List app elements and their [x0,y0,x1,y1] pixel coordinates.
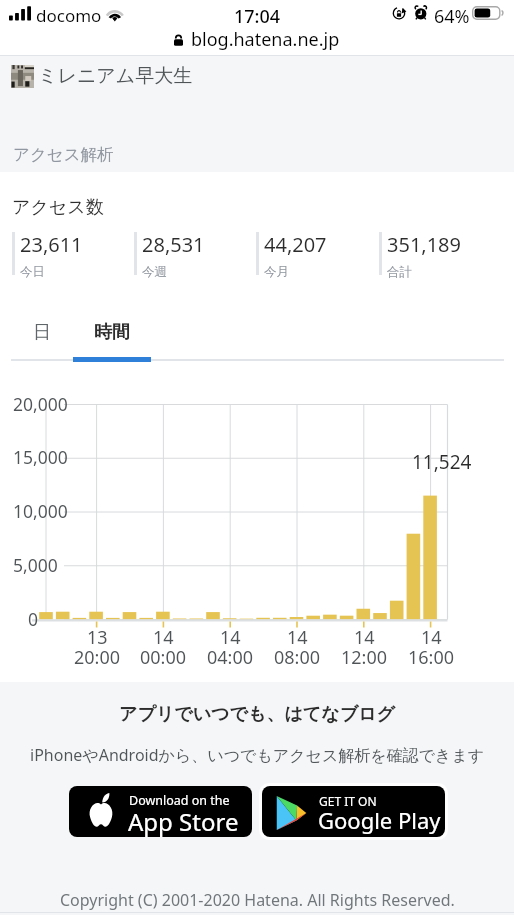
staticText: 11,524 [412,449,472,475]
staticText: 14 [421,625,442,650]
button[interactable]: 時間 [73,309,151,355]
staticText: 0 [28,607,39,631]
staticText: 14 [220,625,241,650]
staticText: 今日 [20,264,45,280]
staticText: 12:00 [341,645,388,670]
staticText: Copyright (C) 2001-2020 Hatena. All Righ… [60,889,455,911]
staticText: 10,000 [13,499,68,523]
staticText: ミレニアム早大生 [38,64,193,88]
staticText: 00:00 [140,645,187,670]
button[interactable]: Get it on Google Play [259,783,448,840]
button[interactable]: 日 [12,309,72,355]
staticText: 64% [434,4,470,29]
staticText: docomo [36,4,102,27]
staticText: 今月 [264,264,289,280]
staticText: 14 [153,625,174,650]
staticText: 5,000 [13,553,58,577]
staticText: アプリでいつでも、はてなブログ [119,703,395,726]
staticText: Download on the [129,792,230,809]
staticText: 時間 [94,321,130,344]
button[interactable]: ミレニアム早大生 [11,62,193,90]
button[interactable]: Download on the App Store [69,786,252,837]
staticText: iPhoneやAndroidから、いつでもアクセス解析を確認できます [30,744,485,766]
staticText: アクセス解析 [13,144,114,165]
staticText: 16:00 [408,645,455,670]
staticText: 20:00 [74,645,121,670]
staticText: 今週 [142,264,167,280]
staticText: 44,207 [264,231,327,258]
staticText: 14 [287,625,308,650]
staticText: 14 [354,625,375,650]
staticText: 13 [87,625,108,650]
staticText: 日 [33,321,51,344]
staticText: App Store [128,805,239,837]
staticText: 28,531 [142,231,205,258]
staticText: GET IT ON [319,793,377,809]
staticText: 20,000 [13,392,68,416]
staticText: 04:00 [207,645,254,670]
staticText: 23,611 [20,231,83,258]
staticText: 17:04 [234,4,281,29]
staticText: 15,000 [13,445,68,469]
staticText: Google Play [318,805,441,835]
staticText: 351,189 [387,231,461,258]
staticText: blog.hatena.ne.jp [191,27,340,52]
staticText: アクセス数 [12,196,104,219]
staticText: 08:00 [274,645,321,670]
staticText: 合計 [387,264,412,280]
